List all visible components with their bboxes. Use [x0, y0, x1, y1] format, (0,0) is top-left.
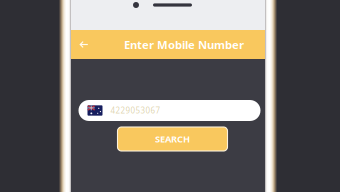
staticText: Enter Mobile Number — [124, 37, 244, 52]
button[interactable]: Back — [71, 30, 97, 59]
staticText: SEARCH — [155, 133, 190, 145]
button[interactable]: SEARCH — [117, 127, 227, 151]
staticText: 4229053067 — [110, 105, 160, 116]
